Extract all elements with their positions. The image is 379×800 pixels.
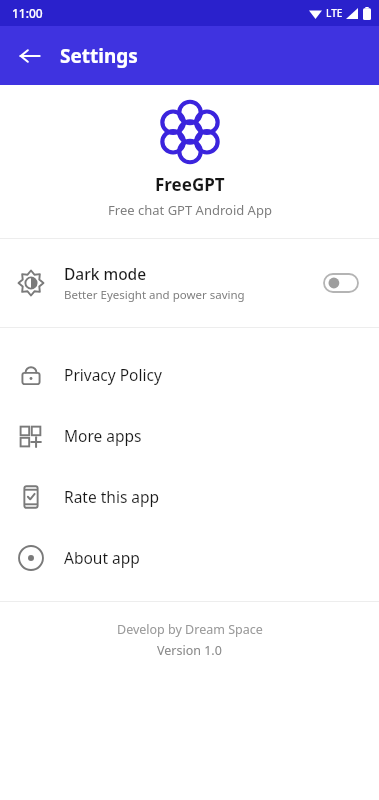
staticText: Privacy Policy (64, 364, 162, 385)
button[interactable]: Dark mode (0, 239, 379, 327)
staticText: FreeGPT (155, 173, 225, 196)
staticText: Settings (60, 43, 138, 69)
staticText: Dark mode (64, 263, 147, 284)
button[interactable]: More apps (0, 405, 379, 466)
staticText: Develop by Dream Space (117, 621, 263, 638)
staticText: Better Eyesight and power saving (64, 287, 245, 303)
button[interactable]: Back (10, 36, 50, 76)
button[interactable]: Dark mode toggle (321, 270, 361, 296)
staticText: LTE (326, 6, 343, 20)
button[interactable]: Privacy Policy (0, 344, 379, 405)
staticText: More apps (64, 425, 142, 446)
staticText: 11:00 (12, 5, 43, 21)
staticText: Rate this app (64, 486, 160, 507)
staticText: About app (64, 547, 140, 568)
staticText: Version 1.0 (157, 642, 222, 659)
staticText: Free chat GPT Android App (95, 201, 285, 219)
button[interactable]: Rate this app (0, 466, 379, 527)
button[interactable]: About app (0, 527, 379, 588)
